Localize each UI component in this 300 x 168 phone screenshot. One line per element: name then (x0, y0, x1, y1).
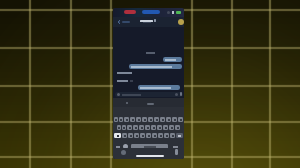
button[interactable] (170, 133, 175, 138)
button[interactable]: Symbols (115, 144, 121, 149)
button[interactable]: Microphone (175, 149, 178, 155)
button[interactable] (130, 117, 135, 122)
button[interactable] (146, 133, 151, 138)
button[interactable]: Emoji keyboard (123, 144, 128, 149)
button[interactable] (119, 117, 123, 122)
button[interactable] (139, 125, 144, 130)
button[interactable] (128, 133, 133, 138)
button[interactable] (160, 117, 165, 122)
button[interactable] (163, 57, 182, 62)
button[interactable] (122, 133, 127, 138)
button[interactable] (138, 85, 180, 90)
button[interactable] (163, 125, 168, 130)
button[interactable] (124, 117, 129, 122)
button[interactable] (117, 125, 121, 130)
button[interactable] (140, 133, 145, 138)
button[interactable]: Notification (142, 10, 160, 14)
button[interactable] (157, 125, 162, 130)
button[interactable] (152, 133, 157, 138)
button[interactable] (142, 117, 147, 122)
button[interactable] (136, 117, 141, 122)
button[interactable]: Space (131, 144, 168, 149)
button[interactable]: Message (115, 92, 183, 97)
button[interactable]: Profile (178, 19, 184, 25)
button[interactable] (129, 64, 182, 69)
button[interactable]: Shift (114, 133, 121, 138)
button[interactable]: Recording (124, 10, 136, 14)
button[interactable] (148, 117, 153, 122)
button[interactable] (178, 117, 183, 122)
button[interactable]: Enter (170, 144, 181, 149)
button[interactable]: Back (117, 20, 130, 24)
button[interactable] (133, 125, 138, 130)
button[interactable]: Emoji picker (121, 150, 126, 155)
button[interactable] (158, 133, 163, 138)
button[interactable] (166, 117, 171, 122)
button[interactable] (151, 125, 156, 130)
button[interactable] (172, 117, 177, 122)
button[interactable] (145, 125, 150, 130)
button[interactable] (154, 117, 159, 122)
button[interactable] (169, 125, 174, 130)
button[interactable] (122, 125, 126, 130)
button[interactable] (164, 133, 169, 138)
button[interactable] (114, 117, 118, 122)
button[interactable] (117, 79, 128, 82)
button[interactable] (117, 71, 132, 74)
button[interactable] (127, 125, 132, 130)
button[interactable] (175, 125, 180, 130)
button[interactable]: Backspace (176, 133, 183, 138)
button[interactable] (134, 133, 139, 138)
